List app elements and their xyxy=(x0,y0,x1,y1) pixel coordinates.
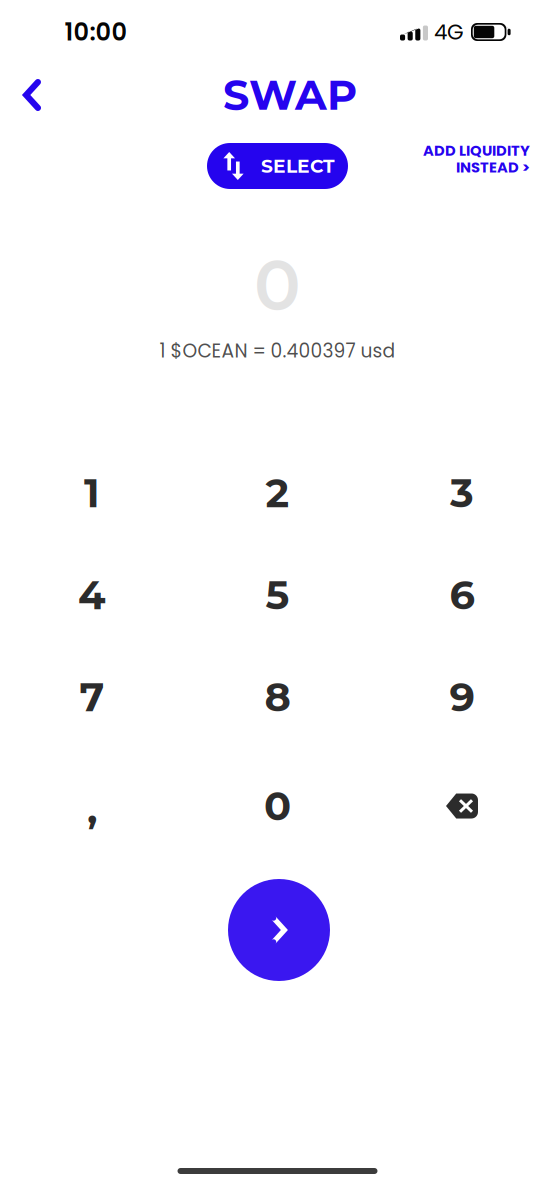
button[interactable]: 8 xyxy=(185,646,370,748)
staticText: 1 $OCEAN = 0.400397 usd xyxy=(159,338,395,364)
button[interactable]: 0 xyxy=(185,755,370,857)
staticText: 0 xyxy=(264,782,291,830)
button[interactable]: 5 xyxy=(185,544,370,646)
button[interactable]: 1 xyxy=(0,442,184,544)
button[interactable]: Decimal separator xyxy=(0,755,184,857)
button[interactable]: 3 xyxy=(369,442,554,544)
staticText: 10:00 xyxy=(64,15,127,49)
button[interactable]: SELECT xyxy=(207,143,348,189)
button[interactable]: 9 xyxy=(369,646,554,748)
staticText: INSTEAD > xyxy=(456,157,530,177)
button[interactable]: Continue xyxy=(228,879,330,981)
staticText: 7 xyxy=(79,673,104,721)
button[interactable]: 4 xyxy=(0,544,184,646)
button[interactable]: 2 xyxy=(185,442,370,544)
staticText: 5 xyxy=(265,571,289,619)
staticText: ADD LIQUIDITY xyxy=(423,140,530,161)
button[interactable]: Back xyxy=(4,67,60,123)
button[interactable]: ADD LIQUIDITY xyxy=(410,135,530,183)
staticText: 4 xyxy=(78,571,106,619)
button[interactable]: 7 xyxy=(0,646,184,748)
staticText: 1 xyxy=(84,469,100,517)
staticText: 2 xyxy=(265,469,289,517)
staticText: , xyxy=(87,785,97,833)
staticText: 6 xyxy=(449,571,474,619)
staticText: 4G xyxy=(434,17,464,47)
staticText: 8 xyxy=(264,673,290,721)
button[interactable]: Delete xyxy=(369,755,554,857)
staticText: 0 xyxy=(254,243,301,327)
staticText: SWAP xyxy=(223,70,357,120)
staticText: 9 xyxy=(449,673,474,721)
staticText: 3 xyxy=(450,469,474,517)
button[interactable]: 6 xyxy=(369,544,554,646)
staticText: SELECT xyxy=(261,155,335,177)
